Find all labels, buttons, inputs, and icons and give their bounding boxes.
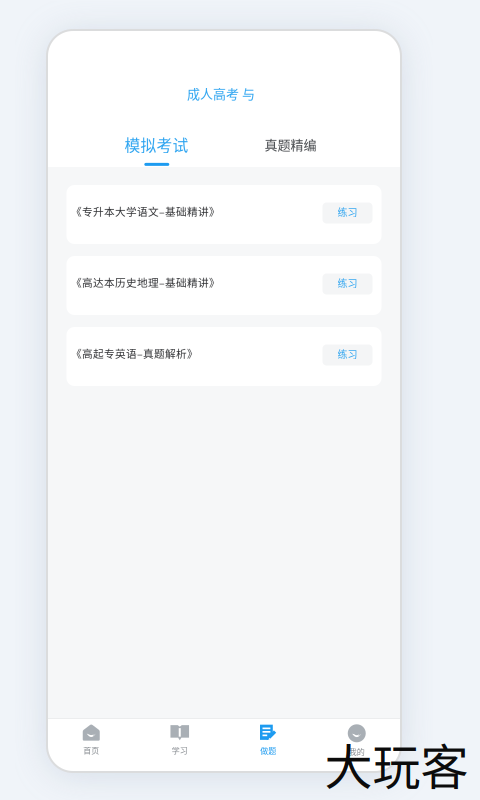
staticText: 真题精编 <box>264 134 316 153</box>
button[interactable]: 《高达本历史地理–基础精讲》 <box>66 256 381 315</box>
staticText: 练习 <box>337 205 357 219</box>
staticText: 首页 <box>83 744 99 756</box>
staticText: 练习 <box>337 276 357 290</box>
staticText: 《高达本历史地理–基础精讲》 <box>71 274 220 290</box>
button[interactable]: 真题精编 <box>264 134 316 153</box>
staticText: 我的 <box>349 746 365 757</box>
button[interactable]: 《高起专英语–真题解析》 <box>66 327 381 386</box>
button[interactable]: 首页 <box>47 719 135 772</box>
button[interactable]: 模拟考试 <box>124 133 188 156</box>
button[interactable]: 《专升本大学语文–基础精讲》 <box>66 185 381 244</box>
staticText: 模拟考试 <box>124 133 188 156</box>
staticText: 成人高考 与 <box>187 84 255 102</box>
button[interactable]: 学习 <box>135 719 224 772</box>
staticText: 《高起专英语–真题解析》 <box>71 345 198 361</box>
button[interactable]: 成人高考 与 <box>187 84 255 102</box>
staticText: 《专升本大学语文–基础精讲》 <box>71 203 220 219</box>
staticText: 做题 <box>260 745 276 756</box>
button[interactable]: 做题 <box>224 719 312 772</box>
button[interactable]: 我的 <box>312 719 401 772</box>
staticText: 学习 <box>172 744 188 756</box>
staticText: 练习 <box>337 347 357 361</box>
staticText: 大玩客 <box>324 729 468 798</box>
